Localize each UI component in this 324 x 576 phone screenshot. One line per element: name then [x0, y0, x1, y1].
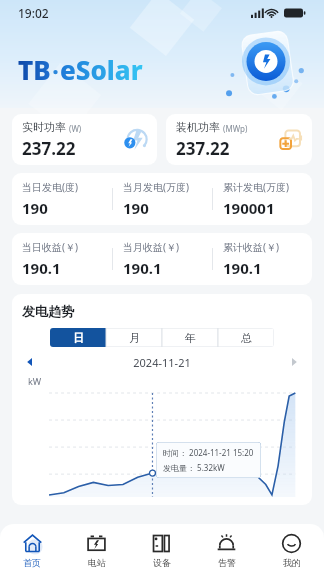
staticText: 首页	[23, 557, 41, 568]
staticText: 累计发电(万度)	[223, 180, 289, 194]
staticText: 告警	[218, 557, 236, 568]
staticText: 190	[123, 198, 149, 218]
button[interactable]: 当月发电(万度)	[113, 173, 212, 225]
button[interactable]: 日	[50, 328, 106, 347]
button[interactable]: 当日收益(￥)	[12, 233, 112, 285]
staticText: 190001	[223, 198, 275, 218]
button[interactable]: 告警	[194, 524, 259, 576]
staticText: 当月收益(￥)	[123, 240, 179, 254]
staticText: (MWp)	[223, 123, 248, 134]
staticText: 设备	[153, 557, 171, 568]
staticText: eSolar	[60, 52, 143, 87]
staticText: 237.22	[22, 137, 76, 160]
button[interactable]: Next day	[286, 354, 302, 370]
button[interactable]: 实时功率	[12, 114, 157, 165]
button[interactable]: 累计发电(万度)	[213, 173, 312, 225]
staticText: (W)	[69, 123, 82, 134]
staticText: 时间： 2024-11-21 15:20	[163, 447, 254, 458]
staticText: 19:02	[18, 5, 49, 21]
staticText: 年	[185, 331, 196, 345]
staticText: 日	[73, 331, 84, 345]
staticText: 190.1	[223, 258, 262, 278]
staticText: 190.1	[22, 258, 61, 278]
staticText: 我的	[283, 557, 301, 568]
staticText: 累计收益(￥)	[223, 240, 279, 254]
staticText: 装机功率	[176, 120, 220, 134]
staticText: 当日发电(度)	[22, 180, 78, 194]
staticText: 实时功率	[22, 120, 66, 134]
staticText: 电站	[88, 557, 106, 568]
staticText: 190	[22, 198, 48, 218]
staticText: 总	[241, 331, 252, 345]
button[interactable]: 当月收益(￥)	[113, 233, 212, 285]
staticText: 当日收益(￥)	[22, 240, 78, 254]
staticText: 发电趋势	[22, 303, 74, 319]
button[interactable]: 设备	[129, 524, 194, 576]
staticText: 月	[129, 331, 140, 345]
staticText: 2024-11-21	[133, 355, 191, 370]
button[interactable]: 年	[162, 328, 218, 347]
button[interactable]: 累计收益(￥)	[213, 233, 312, 285]
button[interactable]: 当日发电(度)	[12, 173, 112, 225]
button[interactable]: 装机功率	[166, 114, 312, 165]
staticText: 237.22	[176, 137, 230, 160]
staticText: kW	[28, 375, 42, 387]
button[interactable]: 我的	[259, 524, 324, 576]
button[interactable]: 首页	[0, 524, 64, 576]
button[interactable]: Previous day	[22, 354, 38, 370]
button[interactable]: 月	[106, 328, 162, 347]
staticText: 190.1	[123, 258, 162, 278]
staticText: TB	[18, 52, 51, 87]
staticText: 发电量： 5.32kW	[163, 462, 225, 473]
button[interactable]: 总	[218, 328, 274, 347]
button[interactable]: 电站	[64, 524, 129, 576]
staticText: 当月发电(万度)	[123, 180, 189, 194]
